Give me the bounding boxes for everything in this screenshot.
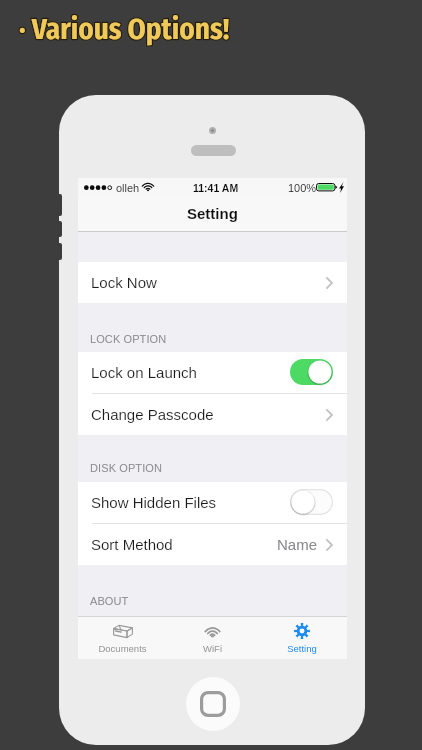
staticText: ABOUT: [90, 595, 129, 607]
staticText: · Various Options!: [19, 12, 230, 47]
staticText: Documents: [98, 643, 147, 654]
staticText: Sort Method: [91, 536, 173, 553]
staticText: 11:41 AM: [193, 182, 239, 194]
button[interactable]: Change Passcode: [78, 394, 347, 435]
staticText: Lock Now: [91, 274, 157, 291]
staticText: LOCK OPTION: [90, 333, 167, 345]
button[interactable]: WiFi: [167, 617, 257, 659]
button[interactable]: Show Hidden Files: [78, 482, 347, 523]
button[interactable]: Documents: [78, 617, 167, 659]
staticText: olleh: [116, 182, 140, 194]
staticText: · Various Options!: [19, 12, 230, 47]
staticText: Name: [277, 536, 318, 553]
staticText: WiFi: [203, 643, 222, 654]
button[interactable]: Switch off: [290, 489, 333, 515]
button[interactable]: Lock on Launch: [78, 352, 347, 393]
button[interactable]: Setting: [257, 617, 347, 659]
staticText: Setting: [187, 205, 238, 222]
button[interactable]: Sort Method: [78, 524, 347, 565]
staticText: DISK OPTION: [90, 462, 162, 474]
staticText: Show Hidden Files: [91, 494, 217, 511]
button[interactable]: Lock Now: [78, 262, 347, 303]
staticText: Lock on Launch: [91, 364, 197, 381]
staticText: Setting: [287, 643, 317, 654]
staticText: Change Passcode: [91, 406, 214, 423]
button[interactable]: Switch on: [290, 359, 333, 385]
staticText: 100%: [288, 182, 317, 194]
